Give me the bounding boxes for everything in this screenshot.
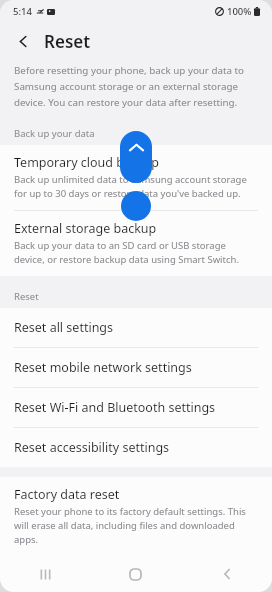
staticText: 100% xyxy=(227,5,252,18)
button[interactable]: Scroll to top xyxy=(120,131,152,183)
staticText: Reset xyxy=(14,290,39,303)
staticText: Back up your data to an SD card or USB s… xyxy=(14,239,258,266)
staticText: Factory data reset xyxy=(14,486,120,503)
button[interactable]: Scroll handle xyxy=(121,191,151,221)
staticText: Reset Wi-Fi and Bluetooth settings xyxy=(14,399,216,416)
staticText: Before resetting your phone, back up you… xyxy=(14,64,256,109)
button[interactable]: Temporary cloud backup xyxy=(0,145,272,210)
button[interactable]: Back xyxy=(8,26,38,56)
button[interactable]: Reset accessibility settings xyxy=(0,428,272,467)
staticText: Back up your data xyxy=(14,127,95,140)
staticText: 5:14 xyxy=(13,5,32,18)
button[interactable]: Reset Wi-Fi and Bluetooth settings xyxy=(0,388,272,427)
staticText: External storage backup xyxy=(14,220,157,237)
button[interactable]: Home xyxy=(90,556,181,592)
staticText: Reset accessibility settings xyxy=(14,439,170,456)
button[interactable]: Reset all settings xyxy=(0,308,272,347)
staticText: Reset xyxy=(44,30,91,53)
button[interactable]: Factory data reset xyxy=(0,477,272,556)
staticText: Back up unlimited data to Samsung accoun… xyxy=(14,173,258,200)
button[interactable]: Back xyxy=(181,556,272,592)
button[interactable]: Recent apps xyxy=(0,556,90,592)
staticText: Reset all settings xyxy=(14,319,114,336)
button[interactable]: External storage backup xyxy=(0,211,272,276)
staticText: Reset mobile network settings xyxy=(14,359,192,376)
staticText: Reset your phone to its factory default … xyxy=(14,505,258,546)
staticText: Temporary cloud backup xyxy=(14,154,160,171)
button[interactable]: Reset mobile network settings xyxy=(0,348,272,387)
